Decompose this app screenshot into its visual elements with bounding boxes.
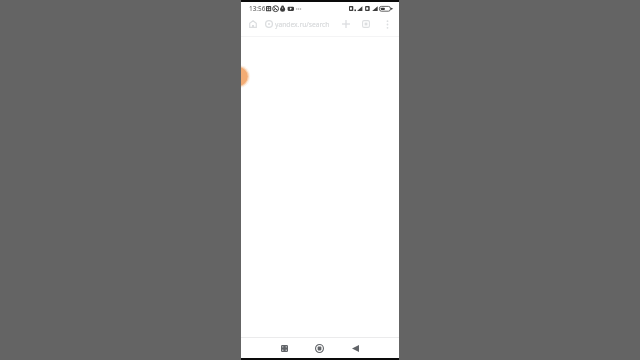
button[interactable]: Back [345, 338, 365, 358]
staticText: 13:56 [249, 4, 266, 13]
button[interactable]: Home [309, 338, 329, 358]
button[interactable]: Recent apps [274, 338, 294, 358]
button[interactable]: yandex.ru/search [265, 14, 375, 34]
button[interactable]: New tab [339, 17, 353, 31]
button[interactable]: Tabs [359, 17, 373, 31]
button[interactable]: More options [381, 18, 393, 30]
button[interactable]: Home [247, 18, 259, 30]
staticText: yandex.ru/search [275, 20, 330, 29]
